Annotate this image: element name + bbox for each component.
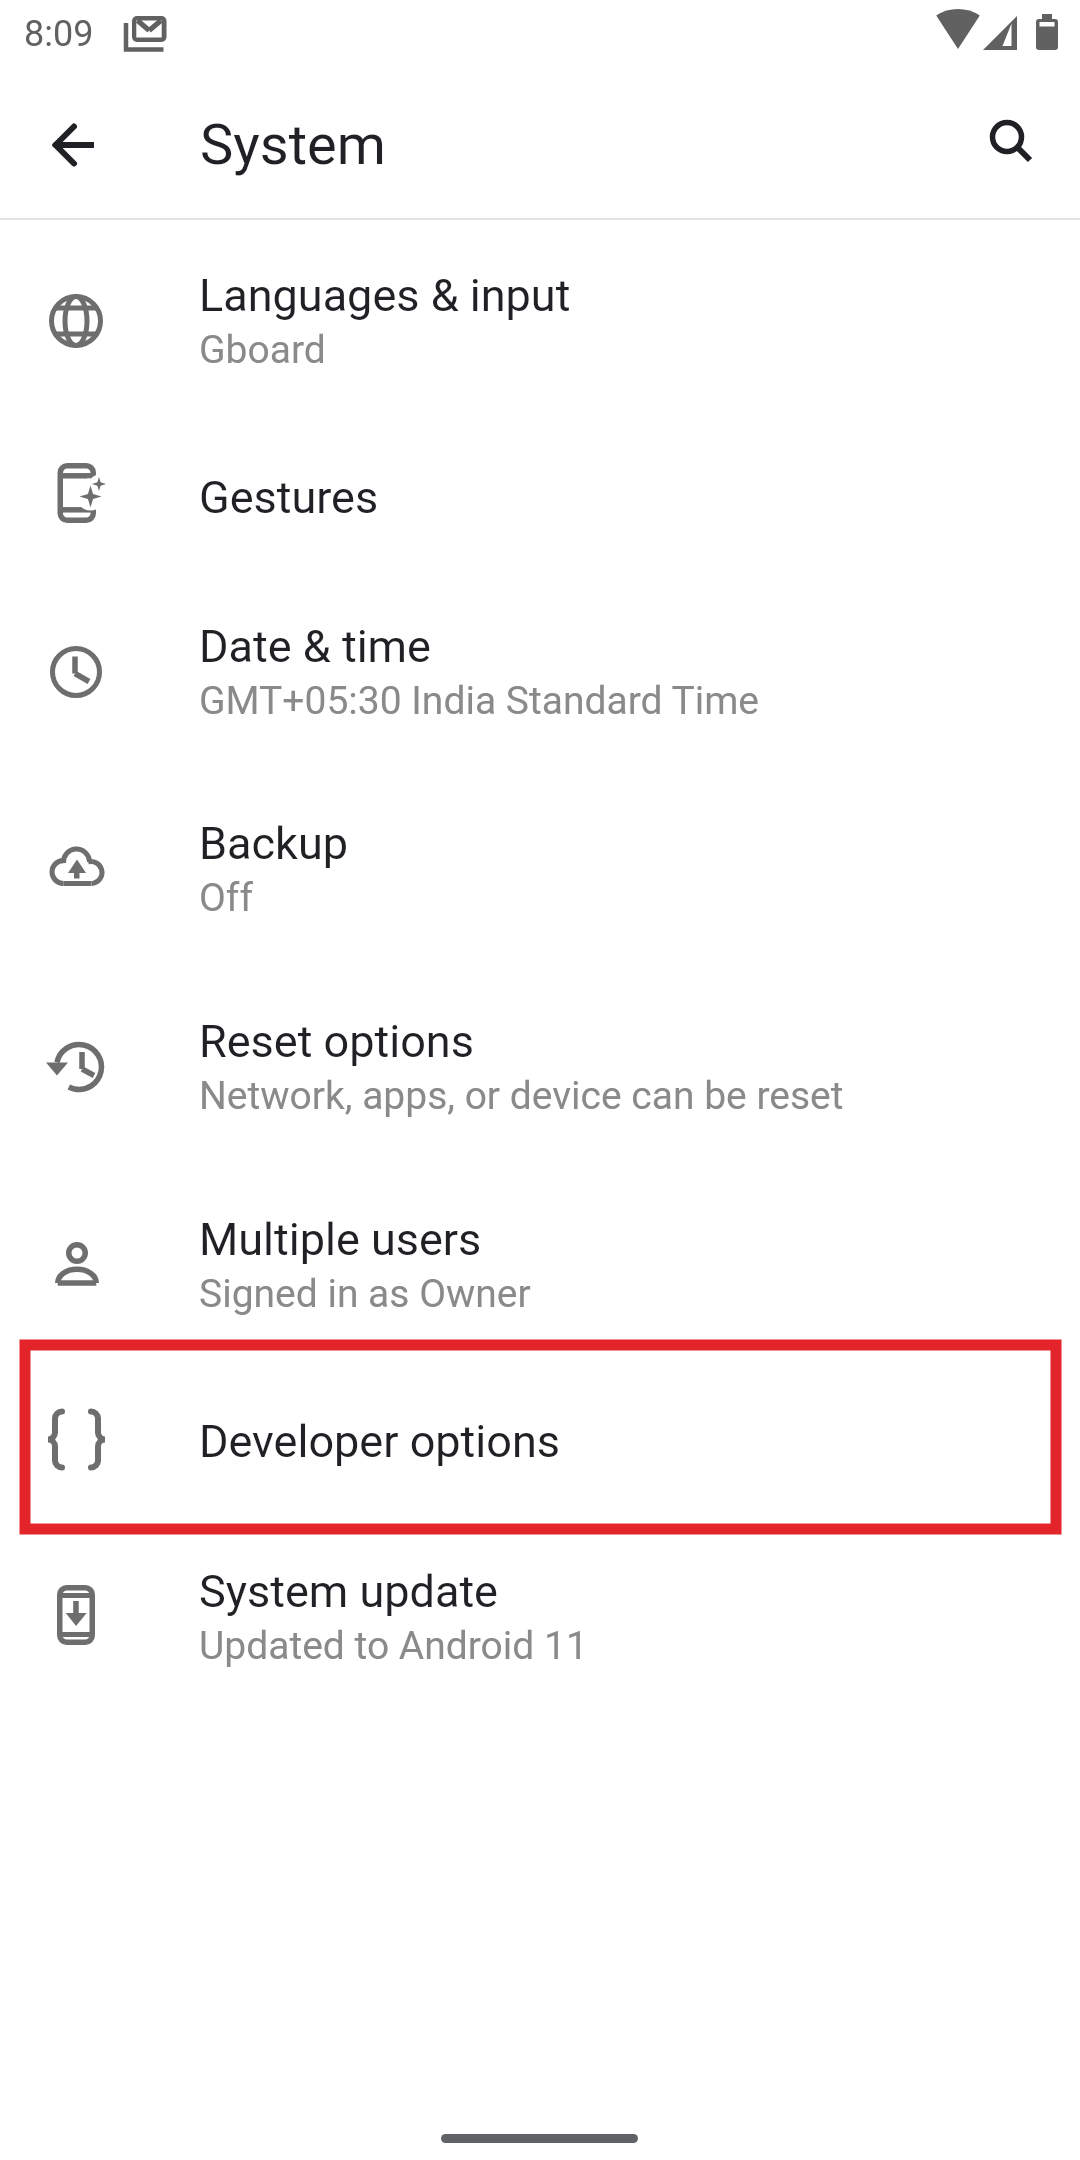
staticText: GMT+05:30 India Standard Time xyxy=(199,678,760,724)
staticText: 8:09 xyxy=(24,13,94,55)
staticText: Off xyxy=(199,875,253,921)
staticText: Backup xyxy=(199,817,348,870)
staticText: System xyxy=(200,112,386,178)
staticText: System update xyxy=(199,1565,498,1618)
staticText: Reset options xyxy=(199,1015,474,1068)
button[interactable]: System update xyxy=(0,1518,1080,1716)
button[interactable] xyxy=(51,121,99,169)
button[interactable]: Backup xyxy=(0,770,1080,968)
button[interactable]: Developer options xyxy=(0,1364,1080,1518)
button[interactable]: Multiple users xyxy=(0,1166,1080,1364)
staticText: Multiple users xyxy=(199,1213,482,1266)
staticText: Network, apps, or device can be reset xyxy=(199,1073,844,1119)
staticText: Gboard xyxy=(199,327,326,373)
button[interactable]: Gestures xyxy=(0,420,1080,574)
staticText: Gestures xyxy=(199,471,379,524)
button[interactable] xyxy=(983,119,1035,171)
staticText: Languages & input xyxy=(199,269,571,322)
button[interactable]: Reset options xyxy=(0,968,1080,1166)
button[interactable]: Date & time xyxy=(0,574,1080,770)
button[interactable]: Languages & input xyxy=(0,222,1080,420)
staticText: Updated to Android 11 xyxy=(199,1623,588,1669)
staticText: Date & time xyxy=(199,620,431,673)
staticText: Developer options xyxy=(199,1415,560,1468)
staticText: Signed in as Owner xyxy=(199,1271,531,1317)
